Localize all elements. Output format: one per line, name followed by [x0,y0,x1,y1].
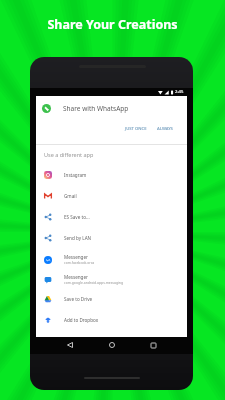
button[interactable]: Share with WhatsApp [36,97,187,119]
button[interactable]: Gmail [36,185,187,206]
staticText: Android Beam [64,338,95,344]
staticText: Add to Dropbox [64,317,99,323]
staticText: ALWAYS [157,126,173,132]
button[interactable]: ALWAYS [154,124,176,134]
button[interactable]: JUST ONCE [122,124,150,134]
button[interactable]: Add to Dropbox [36,309,187,330]
button[interactable]: Messenger [36,249,187,270]
staticText: 2:45 [175,89,184,95]
staticText: Send by LAN [64,235,92,241]
staticText: ES Save to... [64,214,90,220]
staticText: Use a different app [44,151,94,158]
button[interactable]: Save to Drive [36,288,187,309]
button[interactable]: Android Beam [36,330,187,351]
button[interactable]: Home [104,337,120,353]
staticText: Instagram [64,172,87,178]
staticText: JUST ONCE [125,126,147,132]
staticText: Messenger [64,254,88,260]
staticText: Gmail [64,193,77,199]
staticText: Save to Drive [64,296,93,302]
button[interactable]: Messenger [36,269,187,290]
staticText: Share with WhatsApp [63,104,129,113]
staticText: Share Your Creations [0,16,225,33]
button[interactable]: ES Save to... [36,206,187,227]
button[interactable]: Back [62,337,78,353]
button[interactable]: Instagram [36,164,187,185]
staticText: com.facebook.orca [64,260,95,265]
button[interactable]: Send by LAN [36,227,187,248]
button[interactable]: Recent apps [145,337,161,353]
staticText: com.google.android.apps.messaging [64,280,124,285]
staticText: Messenger [64,274,88,280]
